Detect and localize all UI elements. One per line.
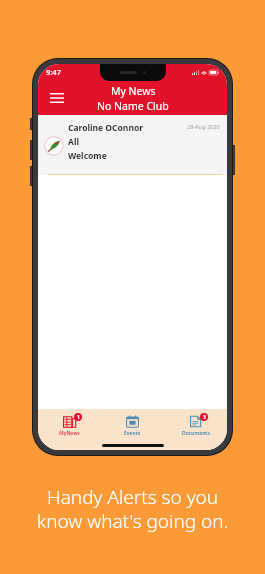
staticText: MyNews bbox=[59, 430, 80, 437]
button[interactable]: Events bbox=[101, 409, 164, 441]
staticText: 1 bbox=[77, 414, 80, 421]
button[interactable]: Caroline OConnor bbox=[38, 115, 227, 174]
staticText: Caroline OConnor bbox=[68, 122, 144, 134]
staticText: Documents bbox=[182, 430, 210, 437]
button[interactable]: Menu bbox=[46, 87, 68, 109]
staticText: Welcome bbox=[68, 150, 107, 162]
staticText: No Name Club bbox=[97, 99, 169, 113]
staticText: 3 bbox=[203, 414, 206, 421]
staticText: 9:47 bbox=[46, 67, 61, 77]
staticText: Events bbox=[124, 430, 141, 437]
staticText: Handy Alerts so you know what's going on… bbox=[14, 484, 251, 533]
button[interactable]: 3 bbox=[164, 409, 227, 441]
staticText: All bbox=[68, 136, 79, 148]
button[interactable]: 1 bbox=[38, 409, 101, 441]
staticText: My News bbox=[111, 84, 156, 98]
staticText: 28-Aug-2020 bbox=[187, 123, 220, 130]
